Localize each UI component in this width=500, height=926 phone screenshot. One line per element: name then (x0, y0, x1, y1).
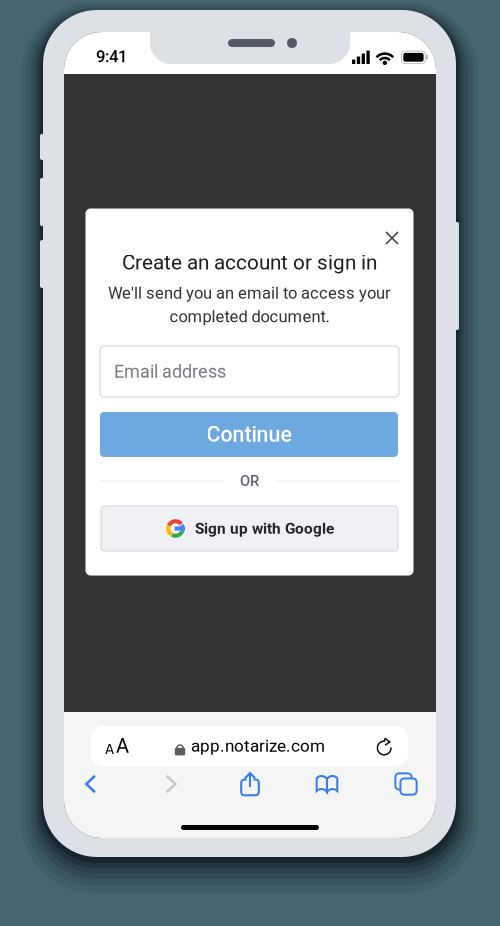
staticText: Email address (114, 361, 226, 382)
button[interactable]: Close (376, 222, 408, 254)
staticText: completed document. (169, 307, 329, 326)
button[interactable]: Share (226, 762, 274, 806)
staticText: A (105, 741, 114, 758)
button[interactable]: Text size options (91, 726, 143, 766)
staticText: OR (240, 472, 259, 490)
staticText: We'll send you an email to access your (108, 283, 391, 303)
staticText: Continue (206, 422, 291, 447)
staticText: Create an account or sign in (122, 250, 377, 275)
button[interactable]: Continue (100, 412, 398, 457)
button[interactable]: Bookmarks (303, 762, 351, 806)
staticText: 9:41 (96, 47, 127, 66)
button[interactable]: Tabs (382, 762, 430, 806)
staticText: A (116, 734, 129, 758)
button[interactable]: Sign up with Google (101, 506, 398, 551)
button[interactable]: Forward (147, 762, 195, 806)
staticText: Sign up with Google (195, 519, 334, 537)
button[interactable]: Reload page (365, 726, 405, 766)
button[interactable]: Back (67, 762, 115, 806)
staticText: app.notarize.com (191, 736, 325, 756)
